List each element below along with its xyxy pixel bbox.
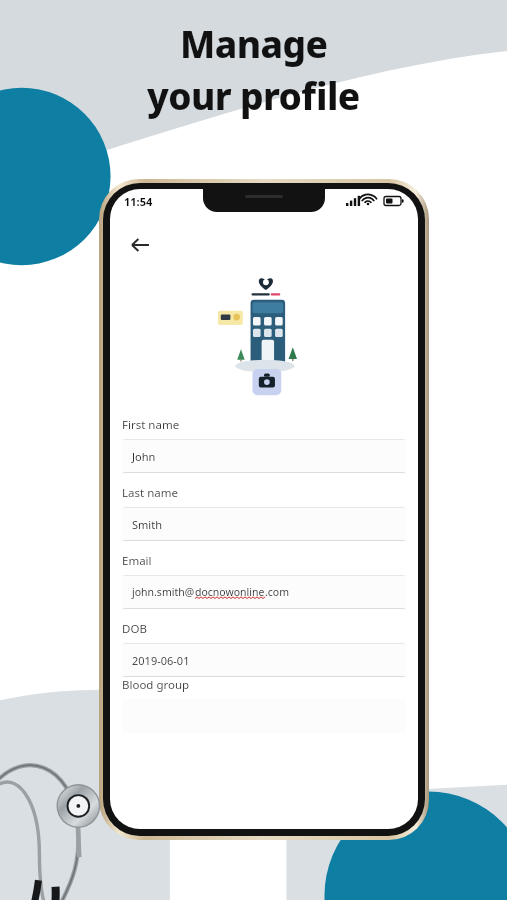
staticText: 11:54 (124, 194, 153, 209)
staticText: .com (265, 585, 290, 599)
button[interactable]: 2019-06-01 (122, 643, 406, 677)
staticText: Manage (180, 18, 328, 68)
staticText: 2019-06-01 (132, 653, 190, 668)
button[interactable]: Back (120, 225, 160, 265)
button[interactable]: Change profile photo (216, 273, 312, 397)
staticText: DOB (122, 621, 147, 637)
staticText: Email (122, 553, 152, 569)
staticText: Last name (122, 485, 178, 501)
button[interactable]: John (122, 439, 406, 473)
staticText: Smith (132, 517, 162, 532)
staticText: Blood group (122, 677, 190, 693)
button[interactable]: Smith (122, 507, 406, 541)
staticText: john.smith@ (132, 585, 195, 599)
staticText: your profile (147, 70, 360, 120)
staticText: First name (122, 417, 180, 433)
button[interactable]: john.smith@ (122, 575, 406, 609)
staticText: John (132, 449, 156, 464)
staticText: docnowonline (195, 585, 265, 599)
